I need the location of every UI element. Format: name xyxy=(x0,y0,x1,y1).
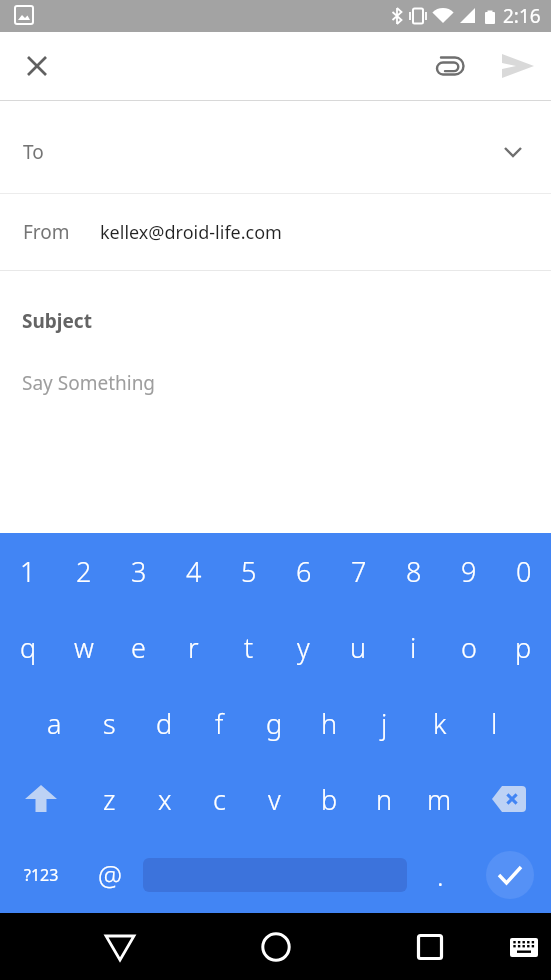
button[interactable] xyxy=(468,837,551,913)
staticText: z xyxy=(103,781,116,818)
button[interactable]: u xyxy=(331,609,386,685)
button[interactable]: r xyxy=(166,609,221,685)
staticText: 7 xyxy=(351,553,367,590)
staticText: l xyxy=(491,705,498,742)
button[interactable]: s xyxy=(82,685,137,761)
staticText: q xyxy=(20,629,37,666)
staticText: r xyxy=(188,629,199,666)
staticText: ?123 xyxy=(24,864,59,886)
button[interactable]: 8 xyxy=(386,533,441,609)
button[interactable]: b xyxy=(302,761,357,837)
button[interactable] xyxy=(143,837,407,913)
button[interactable]: n xyxy=(357,761,412,837)
staticText: 2 xyxy=(76,553,92,590)
button[interactable]: j xyxy=(357,685,412,761)
button[interactable]: 5 xyxy=(221,533,276,609)
button[interactable] xyxy=(258,929,294,965)
button[interactable]: 4 xyxy=(166,533,221,609)
button[interactable]: k xyxy=(412,685,467,761)
button[interactable]: 6 xyxy=(276,533,331,609)
staticText: w xyxy=(74,629,94,666)
button[interactable]: 3 xyxy=(111,533,166,609)
staticText: u xyxy=(350,629,367,666)
staticText: 8 xyxy=(406,553,422,590)
button[interactable]: h xyxy=(302,685,357,761)
staticText: i xyxy=(410,629,417,666)
staticText: t xyxy=(244,629,254,666)
button[interactable]: y xyxy=(276,609,331,685)
button[interactable] xyxy=(0,761,82,837)
staticText: From xyxy=(23,219,70,245)
staticText: s xyxy=(103,705,116,742)
staticText: x xyxy=(158,781,172,818)
staticText: 5 xyxy=(241,553,257,590)
staticText: o xyxy=(461,629,477,666)
button[interactable]: z xyxy=(82,761,137,837)
button[interactable] xyxy=(467,761,551,837)
button[interactable]: To xyxy=(0,101,551,193)
staticText: v xyxy=(268,781,281,818)
staticText: j xyxy=(381,705,388,742)
staticText: g xyxy=(266,705,283,742)
staticText: d xyxy=(156,705,173,742)
button[interactable]: a xyxy=(27,685,82,761)
button[interactable] xyxy=(19,48,55,84)
button[interactable]: . xyxy=(413,837,468,913)
button[interactable]: 7 xyxy=(331,533,386,609)
staticText: 0 xyxy=(516,553,532,590)
button[interactable]: p xyxy=(496,609,551,685)
button[interactable]: @ xyxy=(82,837,137,913)
button[interactable]: l xyxy=(467,685,522,761)
button[interactable]: 9 xyxy=(441,533,496,609)
button[interactable]: 1 xyxy=(0,533,56,609)
staticText: . xyxy=(437,857,444,894)
button[interactable] xyxy=(497,46,537,86)
button[interactable]: f xyxy=(192,685,247,761)
button[interactable]: ?123 xyxy=(0,837,82,913)
staticText: c xyxy=(213,781,226,818)
staticText: k xyxy=(433,705,447,742)
staticText: kellex@droid-life.com xyxy=(100,220,282,245)
staticText: 6 xyxy=(296,553,312,590)
staticText: f xyxy=(215,705,224,742)
button[interactable]: v xyxy=(247,761,302,837)
button[interactable]: d xyxy=(137,685,192,761)
button[interactable]: 2 xyxy=(56,533,111,609)
staticText: 2:16 xyxy=(503,3,541,29)
button[interactable]: From xyxy=(0,194,551,270)
button[interactable]: t xyxy=(221,609,276,685)
button[interactable]: m xyxy=(412,761,467,837)
button[interactable] xyxy=(412,929,448,965)
staticText: n xyxy=(376,781,393,818)
staticText: b xyxy=(321,781,338,818)
button[interactable] xyxy=(102,929,138,965)
button[interactable]: c xyxy=(192,761,247,837)
button[interactable]: 0 xyxy=(496,533,551,609)
staticText: y xyxy=(297,629,310,666)
staticText: 1 xyxy=(20,553,36,590)
staticText: 9 xyxy=(461,553,477,590)
button[interactable]: g xyxy=(247,685,302,761)
staticText: m xyxy=(427,781,452,818)
staticText: h xyxy=(321,705,338,742)
button[interactable]: q xyxy=(0,609,56,685)
staticText: Subject xyxy=(22,308,92,334)
button[interactable]: x xyxy=(137,761,192,837)
button[interactable]: o xyxy=(441,609,496,685)
staticText: p xyxy=(515,629,532,666)
button[interactable]: w xyxy=(56,609,111,685)
staticText: a xyxy=(47,705,62,742)
staticText: 3 xyxy=(131,553,147,590)
button[interactable] xyxy=(431,46,471,86)
staticText: Say Something xyxy=(22,370,156,396)
staticText: 4 xyxy=(186,553,202,590)
staticText: e xyxy=(131,629,146,666)
button[interactable]: i xyxy=(386,609,441,685)
staticText: To xyxy=(23,139,44,165)
staticText: @ xyxy=(98,857,122,894)
button[interactable] xyxy=(509,932,539,962)
button[interactable]: e xyxy=(111,609,166,685)
